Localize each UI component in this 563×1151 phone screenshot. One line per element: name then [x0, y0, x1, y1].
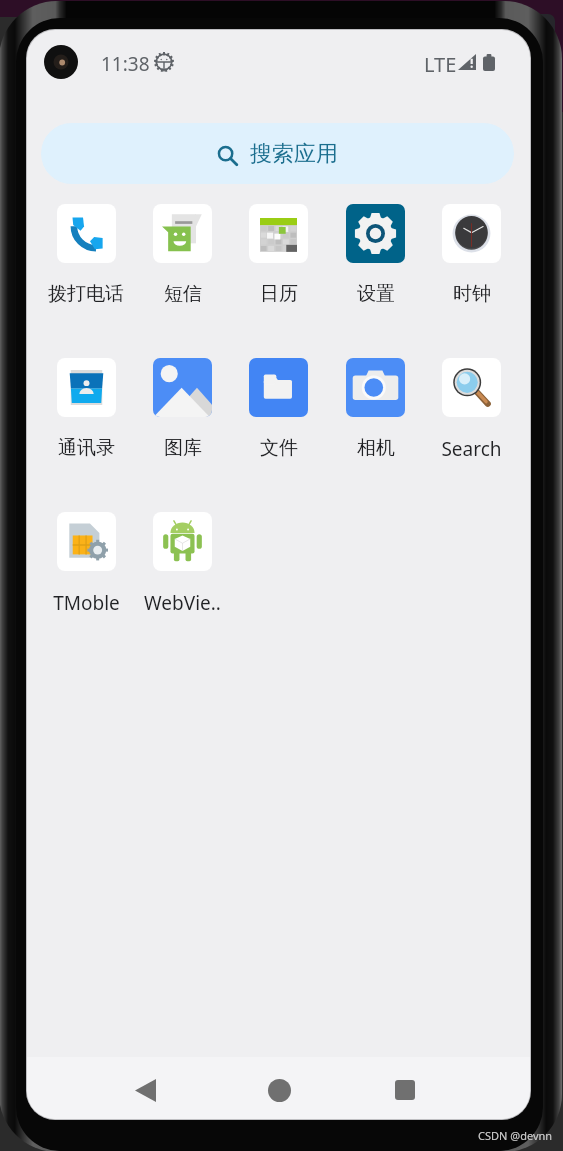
staticText: 11:38 — [101, 51, 150, 77]
button[interactable]: Home — [259, 1070, 299, 1110]
button[interactable]: 相机 — [327, 354, 423, 482]
button[interactable]: TMoble — [38, 508, 134, 636]
button[interactable]: 搜索应用 — [41, 123, 514, 184]
staticText: 文件 — [260, 436, 298, 460]
staticText: CSDN @devnn — [478, 1128, 553, 1143]
staticText: TMoble — [53, 590, 120, 616]
button[interactable]: Back — [125, 1070, 165, 1110]
staticText: 搜索应用 — [250, 140, 338, 168]
staticText: 相机 — [357, 436, 395, 460]
staticText: 设置 — [357, 282, 395, 306]
staticText: 时钟 — [453, 282, 491, 306]
staticText: 通讯录 — [58, 436, 115, 460]
button[interactable]: 拨打电话 — [38, 200, 134, 328]
staticText: 短信 — [164, 282, 202, 306]
button[interactable]: 短信 — [134, 200, 230, 328]
staticText: Search — [441, 436, 502, 462]
button[interactable]: 通讯录 — [38, 354, 134, 482]
button[interactable]: Recents — [385, 1070, 425, 1110]
staticText: 图库 — [164, 436, 202, 460]
button[interactable]: WebVie.. — [134, 508, 230, 636]
button[interactable]: 日历 — [230, 200, 326, 328]
staticText: 日历 — [260, 282, 298, 306]
staticText: LTE — [424, 51, 457, 78]
button[interactable]: 时钟 — [423, 200, 519, 328]
button[interactable]: 文件 — [230, 354, 326, 482]
staticText: 拨打电话 — [48, 282, 124, 306]
button[interactable]: Search — [423, 354, 519, 482]
button[interactable]: 图库 — [134, 354, 230, 482]
button[interactable]: 设置 — [327, 200, 423, 328]
staticText: WebVie.. — [144, 590, 221, 616]
